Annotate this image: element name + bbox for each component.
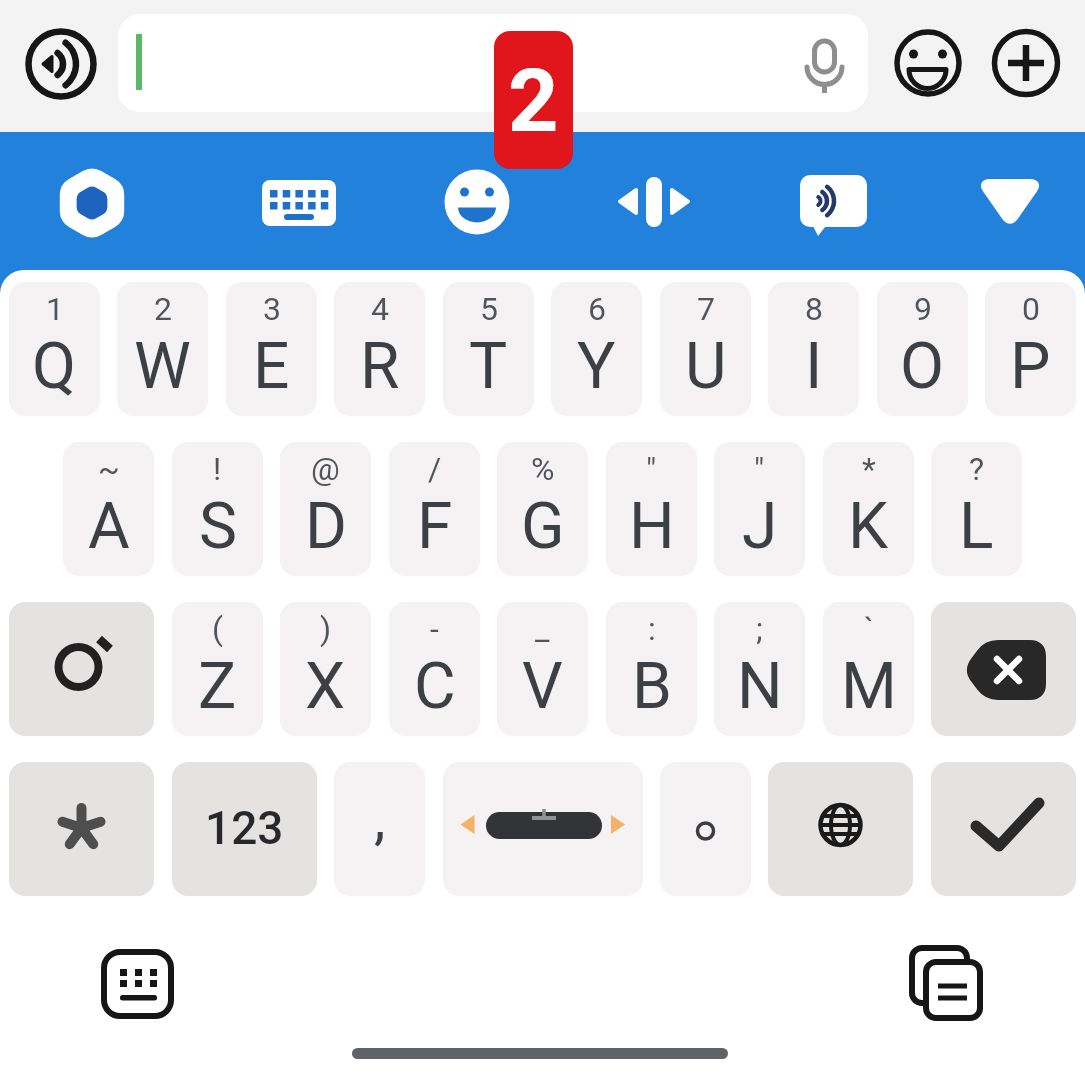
staticText: % [531,450,555,488]
button[interactable]: 123 [172,762,317,896]
staticText: Z [198,649,237,724]
button[interactable] [660,762,751,896]
staticText: 1 [46,290,64,328]
staticText: 2 [508,49,559,152]
button[interactable] [9,762,154,896]
button[interactable]: 1 [9,282,100,416]
button[interactable]: , [334,762,425,896]
staticText: B [632,649,672,724]
staticText: I [805,329,823,404]
staticText: 7 [697,290,715,328]
staticText: S [199,489,237,564]
button[interactable] [118,14,868,112]
button[interactable]: 3 [226,282,317,416]
staticText: 0 [1022,290,1040,328]
staticText: , [374,784,386,852]
button[interactable]: - [389,602,480,736]
staticText: A [88,489,130,564]
button[interactable] [989,26,1063,100]
button[interactable]: 2 [494,31,573,169]
staticText: 6 [588,290,606,328]
staticText: ~ [98,450,120,488]
button[interactable]: ` [823,602,914,736]
button[interactable]: 9 [877,282,968,416]
button[interactable]: % [497,442,588,576]
staticText: N [737,649,783,724]
staticText: X [305,649,346,724]
staticText: C [414,649,456,724]
staticText: K [848,489,889,564]
button[interactable]: ! [172,442,263,576]
button[interactable]: ) [280,602,371,736]
button[interactable]: ~ [63,442,154,576]
button[interactable] [799,33,851,95]
staticText: U [685,329,727,404]
button[interactable]: 6 [551,282,642,416]
button[interactable]: 4 [334,282,425,416]
staticText: : [648,610,656,648]
button[interactable] [262,180,336,226]
button[interactable]: ; [714,602,805,736]
button[interactable] [798,172,870,240]
staticText: D [305,489,347,564]
staticText: O [900,329,945,404]
staticText: F [417,489,453,564]
staticText: _ [535,610,550,648]
button[interactable] [908,944,984,1022]
button[interactable] [57,165,127,241]
button[interactable]: _ [497,602,588,736]
button[interactable]: " [606,442,697,576]
staticText: / [428,450,442,488]
button[interactable]: 5 [443,282,534,416]
button[interactable]: : [606,602,697,736]
staticText: 3 [263,290,281,328]
staticText: Q [32,329,77,404]
button[interactable]: * [823,442,914,576]
staticText: ? [969,450,985,488]
button[interactable] [21,24,101,104]
staticText: H [629,489,675,564]
button[interactable] [931,762,1076,896]
staticText: W [134,329,191,404]
button[interactable]: / [389,442,480,576]
staticText: M [841,649,897,724]
staticText: V [522,649,563,724]
button[interactable] [443,762,643,896]
staticText: T [469,329,508,404]
staticText: 8 [805,290,823,328]
button[interactable] [977,178,1043,228]
staticText: E [253,329,290,404]
staticText: " [754,450,765,488]
button[interactable]: " [714,442,805,576]
staticText: 4 [371,290,389,328]
button[interactable]: 8 [768,282,859,416]
staticText: 5 [480,290,498,328]
staticText: J [742,489,778,564]
button[interactable]: 2 [117,282,208,416]
staticText: 2 [154,290,172,328]
staticText: R [360,329,400,404]
button[interactable]: 7 [660,282,751,416]
staticText: ` [864,610,874,648]
button[interactable] [443,168,511,236]
button[interactable]: @ [280,442,371,576]
button[interactable] [101,949,174,1019]
staticText: ) [320,610,332,648]
staticText: 9 [914,290,932,328]
staticText: ( [212,610,223,648]
button[interactable]: ( [172,602,263,736]
button[interactable] [891,26,965,100]
staticText: L [959,489,994,564]
staticText: @ [311,450,340,488]
button[interactable] [931,602,1076,736]
button[interactable]: 0 [985,282,1076,416]
staticText: Y [577,329,616,404]
button[interactable] [768,762,913,896]
staticText: - [430,610,439,648]
button[interactable] [619,167,689,237]
staticText: P [1010,329,1051,404]
button[interactable]: ? [931,442,1022,576]
button[interactable] [9,602,154,736]
staticText: ! [213,450,222,488]
staticText: G [521,489,565,564]
